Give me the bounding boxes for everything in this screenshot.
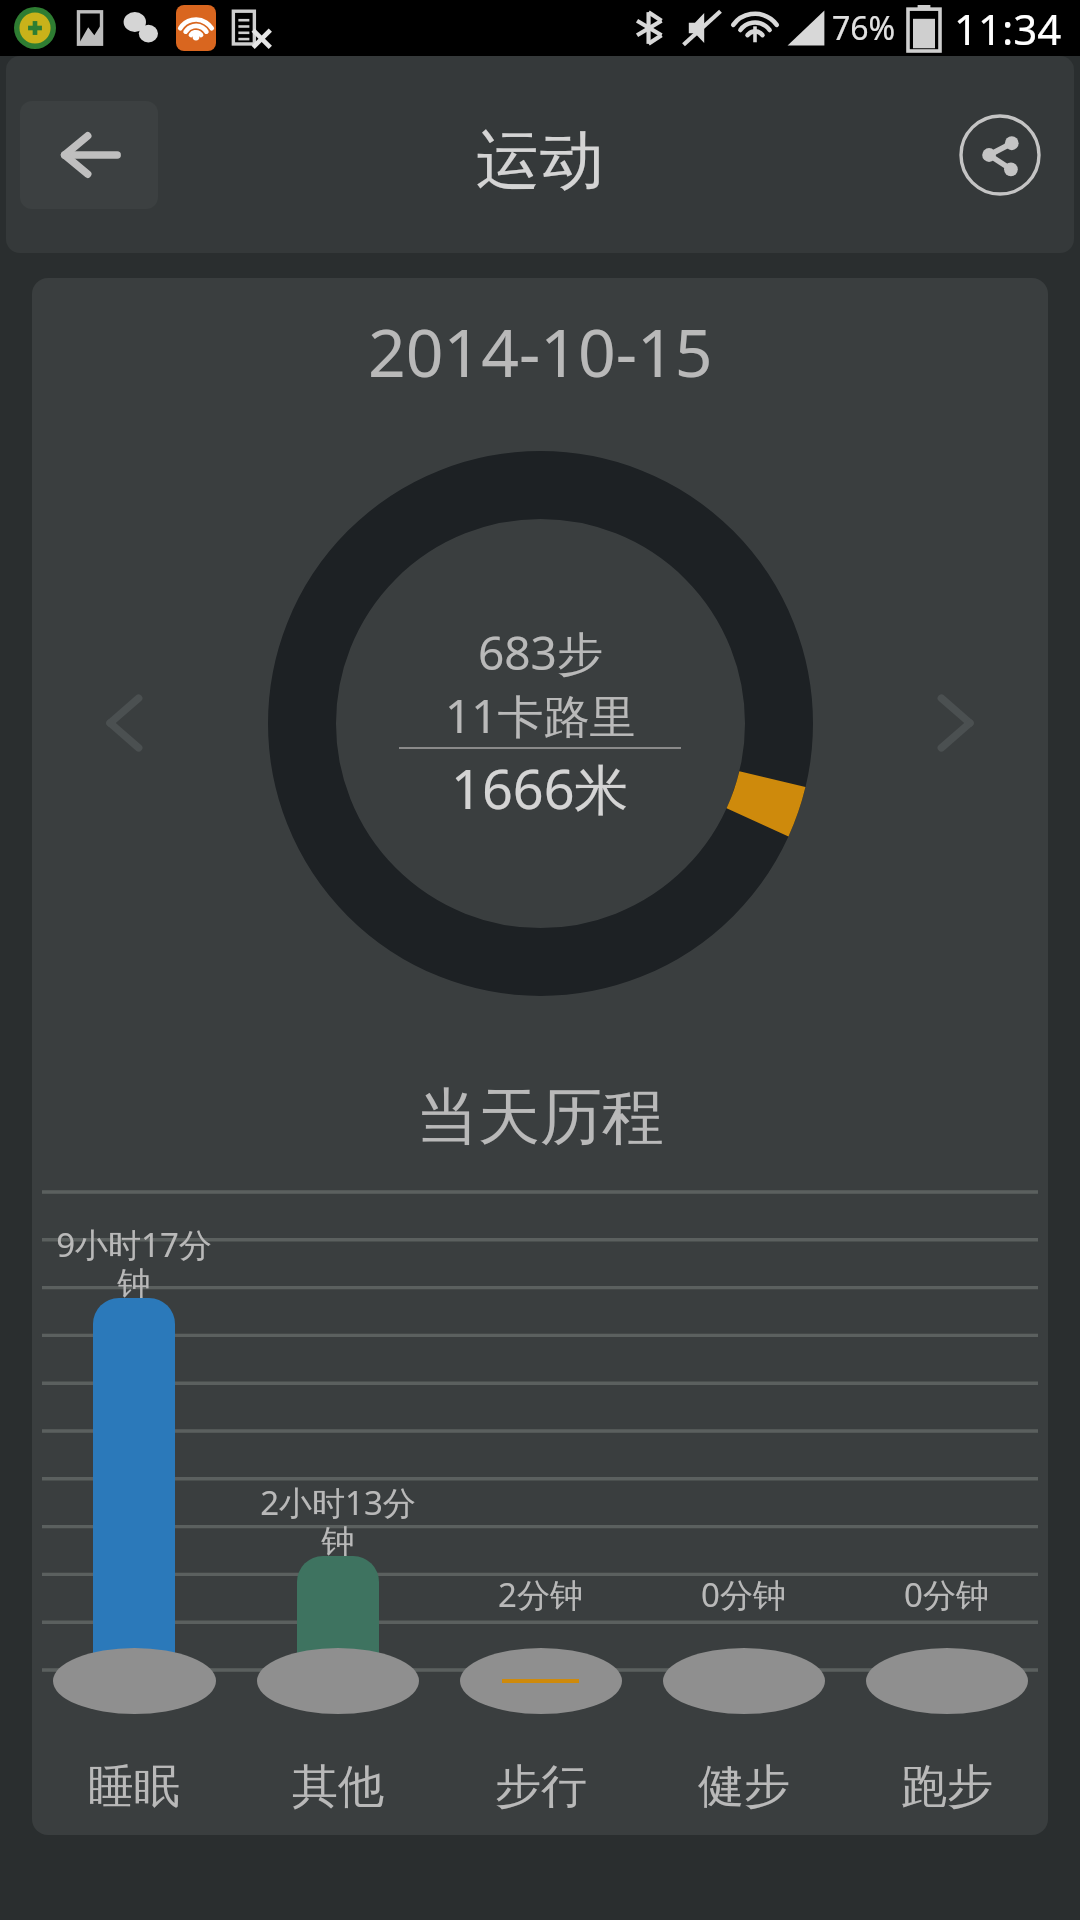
staticText: 76% (832, 6, 896, 50)
button[interactable]: Next day (918, 686, 992, 760)
button[interactable]: 2分钟 (439, 1178, 642, 1818)
staticText: 跑步 (901, 1758, 993, 1816)
staticText: 0分钟 (904, 1572, 989, 1617)
staticText: 11:34 (954, 0, 1062, 56)
staticText: 0分钟 (701, 1572, 786, 1617)
staticText: 9小时17分 钟 (56, 1222, 212, 1305)
staticText: 2014-10-15 (368, 306, 713, 396)
staticText: 683步 (478, 621, 603, 684)
button[interactable]: Share (958, 113, 1042, 197)
button[interactable]: Back (20, 101, 158, 209)
button[interactable]: 9小时17分 钟 (32, 1178, 236, 1818)
button[interactable]: 0分钟 (642, 1178, 845, 1818)
button[interactable]: 0分钟 (845, 1178, 1048, 1818)
staticText: 1666米 (451, 751, 629, 825)
button[interactable]: Previous day (88, 686, 162, 760)
staticText: 当天历程 (416, 1078, 664, 1156)
staticText: 步行 (495, 1758, 587, 1816)
staticText: 健步 (698, 1758, 790, 1816)
button[interactable]: 2小时13分 钟 (236, 1178, 439, 1818)
staticText: 其他 (292, 1758, 384, 1816)
staticText: 11卡路里 (445, 684, 636, 747)
staticText: 2小时13分 钟 (260, 1480, 416, 1563)
staticText: 运动 (476, 120, 604, 201)
staticText: 2分钟 (498, 1572, 583, 1617)
staticText: 睡眠 (88, 1758, 180, 1816)
